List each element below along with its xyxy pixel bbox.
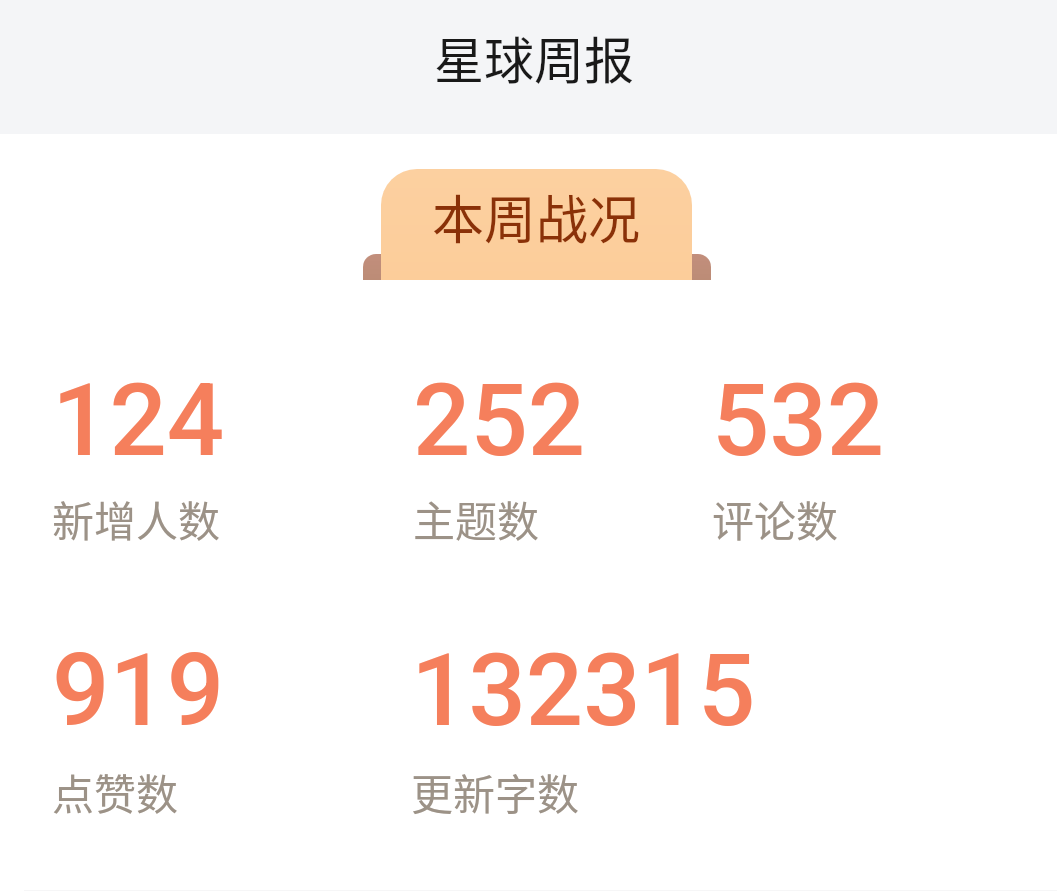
staticText: 本周战况 [432,179,641,254]
staticText: 更新字数 [411,761,580,822]
button[interactable]: 124 [52,361,352,543]
button[interactable]: 本周战况 [381,169,692,280]
staticText: 星球周报 [434,21,634,93]
staticText: 132315 [411,631,756,749]
staticText: 252 [413,361,586,479]
staticText: 124 [52,361,225,479]
staticText: 评论数 [712,488,839,549]
staticText: 主题数 [413,488,540,549]
button[interactable]: 132315 [411,631,761,816]
button[interactable]: 919 [52,631,352,816]
staticText: 点赞数 [52,761,179,822]
button[interactable]: 532 [712,361,1002,543]
staticText: 919 [52,631,225,749]
staticText: 新增人数 [52,488,221,549]
button[interactable]: 252 [413,361,703,543]
staticText: 532 [712,361,885,479]
